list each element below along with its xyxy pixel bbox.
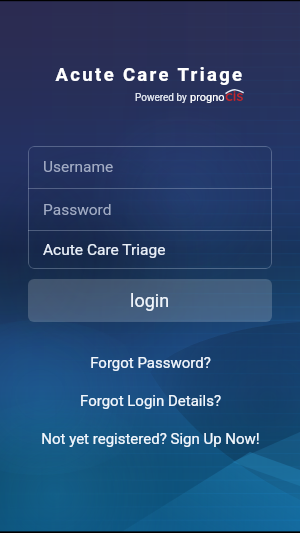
button[interactable]: Forgot Login Details? [0, 390, 300, 411]
staticText: Forgot Login Details? [80, 392, 221, 410]
staticText: Not yet registered? Sign Up Now! [41, 430, 260, 448]
staticText: Password [43, 201, 112, 219]
button[interactable]: login [28, 279, 272, 322]
button[interactable]: Username [28, 146, 272, 188]
button[interactable]: Acute Care Triage [28, 231, 272, 269]
staticText: login [130, 290, 170, 311]
staticText: Acute Care Triage [43, 241, 166, 259]
button[interactable]: Forgot Password? [0, 352, 300, 373]
button[interactable]: Password [28, 189, 272, 230]
staticText: Powered by [135, 92, 187, 104]
staticText: progno [190, 91, 225, 104]
staticText: Username [43, 158, 114, 176]
button[interactable]: Not yet registered? Sign Up Now! [0, 428, 300, 449]
staticText: Acute Care Triage [28, 64, 272, 86]
staticText: Forgot Password? [90, 354, 211, 372]
staticText: cis [225, 86, 244, 105]
